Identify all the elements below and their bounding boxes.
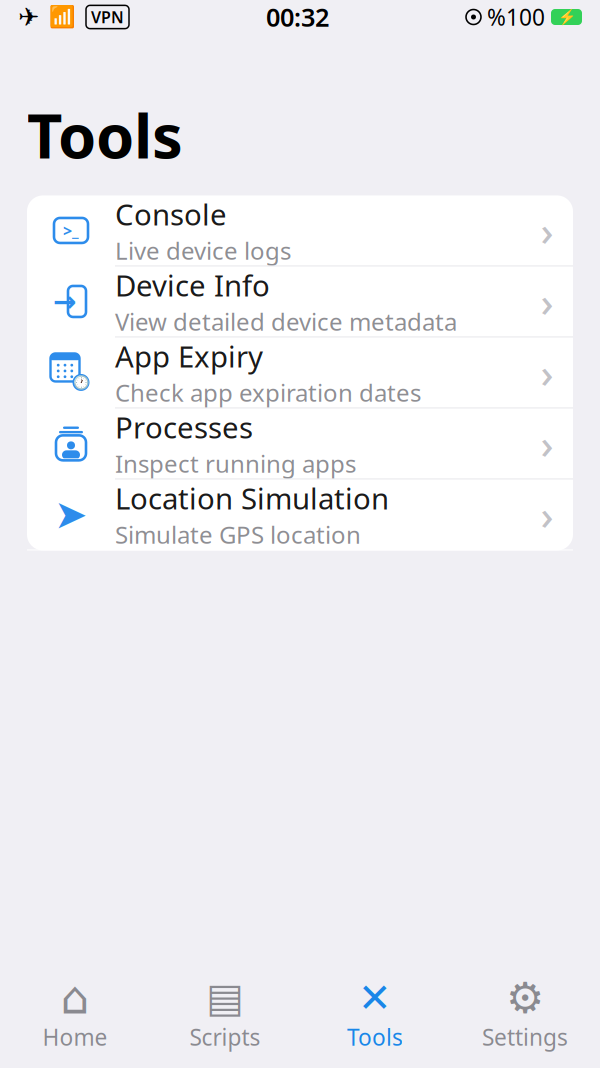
staticText: ⌂ xyxy=(60,972,89,1024)
staticText: Device Info xyxy=(115,265,270,304)
staticText: Live device logs xyxy=(115,234,291,266)
staticText: Inspect running apps xyxy=(115,447,356,479)
staticText: Check app expiration dates xyxy=(115,376,421,408)
staticText: ▤ xyxy=(206,975,244,1021)
staticText: ⚡ xyxy=(557,9,575,25)
staticText: ✈ xyxy=(18,3,39,31)
button[interactable]: 🕐 xyxy=(27,337,573,408)
staticText: Location Simulation xyxy=(115,478,389,517)
button[interactable]: ➤ xyxy=(27,479,573,550)
staticText: VPN xyxy=(91,6,124,28)
staticText: Home xyxy=(42,1022,107,1052)
staticText: Tools xyxy=(347,1022,403,1052)
button[interactable]: Processes xyxy=(27,408,573,479)
staticText: 📶 xyxy=(49,5,76,29)
button[interactable]: ⚙ xyxy=(450,971,600,1064)
staticText: App Expiry xyxy=(115,336,263,375)
staticText: Simulate GPS location xyxy=(115,518,361,550)
button[interactable]: >_ xyxy=(27,195,573,266)
staticText: Console xyxy=(115,194,227,233)
staticText: 🕐 xyxy=(72,375,89,390)
button[interactable]: ✕ xyxy=(300,971,450,1064)
staticText: › xyxy=(540,204,553,257)
button[interactable]: ▤ xyxy=(150,971,300,1064)
staticText: 00:32 xyxy=(266,0,329,34)
staticText: Processes xyxy=(115,407,253,446)
button[interactable]: → xyxy=(27,266,573,337)
staticText: View detailed device metadata xyxy=(115,305,457,337)
button[interactable]: ⌂ xyxy=(0,971,150,1064)
staticText: › xyxy=(540,275,553,328)
staticText: › xyxy=(540,417,553,470)
staticText: › xyxy=(540,488,553,541)
staticText: Tools xyxy=(27,94,183,175)
staticText: ✕ xyxy=(358,975,392,1021)
staticText: → xyxy=(53,286,76,317)
staticText: >_ xyxy=(63,220,79,241)
staticText: ⚙ xyxy=(506,974,544,1022)
staticText: Settings xyxy=(482,1022,568,1052)
staticText: ➤ xyxy=(54,492,88,537)
staticText: Scripts xyxy=(189,1022,260,1052)
staticText: %100 xyxy=(487,2,545,32)
staticText: › xyxy=(540,346,553,399)
